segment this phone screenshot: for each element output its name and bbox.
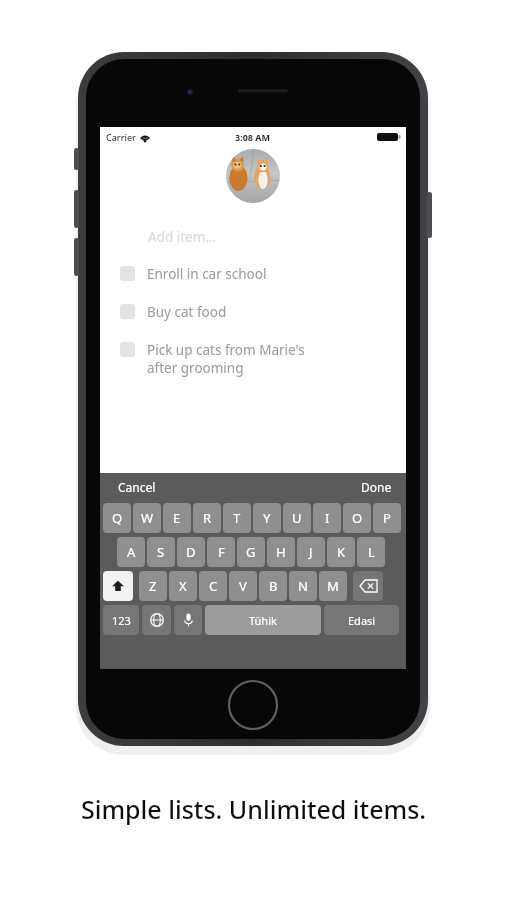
button[interactable]: Z (139, 571, 167, 601)
staticText: L (368, 543, 375, 561)
staticText: Tühik (249, 613, 277, 628)
button[interactable]: Toggle item (120, 304, 135, 319)
button[interactable]: M (319, 571, 347, 601)
button[interactable]: O (343, 503, 371, 533)
staticText: B (269, 577, 278, 595)
staticText: Edasi (348, 613, 376, 628)
staticText: Add item... (148, 228, 217, 246)
button[interactable]: 123 (103, 605, 139, 635)
staticText: T (233, 509, 241, 527)
staticText: Buy cat food (147, 303, 227, 321)
button[interactable]: Q (103, 503, 131, 533)
button[interactable]: D (177, 537, 205, 567)
button[interactable]: Toggle item (100, 293, 406, 331)
staticText: N (298, 577, 308, 595)
button[interactable]: Backspace (353, 571, 383, 601)
button[interactable]: Change keyboard language (142, 605, 171, 635)
button[interactable]: Tühik (205, 605, 321, 635)
staticText: J (309, 543, 313, 561)
staticText: D (186, 543, 196, 561)
button[interactable]: J (297, 537, 325, 567)
button[interactable]: Toggle item (120, 342, 135, 357)
staticText: U (292, 509, 302, 527)
staticText: P (383, 509, 391, 527)
staticText: Cancel (118, 479, 156, 495)
button[interactable]: U (283, 503, 311, 533)
button[interactable]: Y (253, 503, 281, 533)
staticText: W (141, 509, 154, 527)
staticText: H (276, 543, 286, 561)
button[interactable]: S (147, 537, 175, 567)
staticText: O (352, 509, 363, 527)
button[interactable]: Cancel (100, 475, 174, 499)
staticText: Simple lists. Unlimited items. (0, 792, 507, 826)
staticText: Z (149, 577, 157, 595)
button[interactable]: F (207, 537, 235, 567)
staticText: Done (361, 479, 392, 495)
staticText: E (173, 509, 181, 527)
button[interactable]: P (373, 503, 401, 533)
staticText: M (327, 577, 339, 595)
staticText: Enroll in car school (147, 265, 267, 283)
button[interactable]: Toggle item (100, 255, 406, 293)
button[interactable]: Toggle item (100, 331, 406, 387)
button[interactable]: I (313, 503, 341, 533)
button[interactable]: Shift (103, 571, 133, 601)
button[interactable]: Edasi (324, 605, 399, 635)
button[interactable]: K (327, 537, 355, 567)
staticText: R (203, 509, 212, 527)
staticText: F (218, 543, 225, 561)
staticText: 3:08 AM (235, 131, 271, 143)
button[interactable]: G (237, 537, 265, 567)
button[interactable]: Profile photo (226, 149, 280, 203)
button[interactable]: N (289, 571, 317, 601)
button[interactable]: Done (347, 475, 406, 499)
staticText: C (209, 577, 218, 595)
button[interactable]: V (229, 571, 257, 601)
button[interactable]: C (199, 571, 227, 601)
staticText: K (337, 543, 346, 561)
staticText: I (325, 509, 330, 527)
button[interactable]: X (169, 571, 197, 601)
button[interactable]: A (117, 537, 145, 567)
staticText: G (246, 543, 256, 561)
button[interactable]: H (267, 537, 295, 567)
staticText: S (157, 543, 165, 561)
button[interactable]: B (259, 571, 287, 601)
staticText: Pick up cats from Marie's after grooming (147, 341, 305, 377)
staticText: X (179, 577, 187, 595)
button[interactable]: Toggle item (120, 266, 135, 281)
button[interactable]: Dictate (174, 605, 202, 635)
button[interactable]: W (133, 503, 161, 533)
staticText: 123 (112, 613, 131, 628)
button[interactable]: L (357, 537, 385, 567)
staticText: V (239, 577, 247, 595)
staticText: Y (263, 509, 271, 527)
staticText: A (127, 543, 136, 561)
button[interactable]: E (163, 503, 191, 533)
button[interactable]: Add item... (100, 222, 406, 252)
button[interactable]: R (193, 503, 221, 533)
staticText: Carrier (106, 131, 136, 143)
button[interactable]: T (223, 503, 251, 533)
staticText: Q (112, 509, 123, 527)
